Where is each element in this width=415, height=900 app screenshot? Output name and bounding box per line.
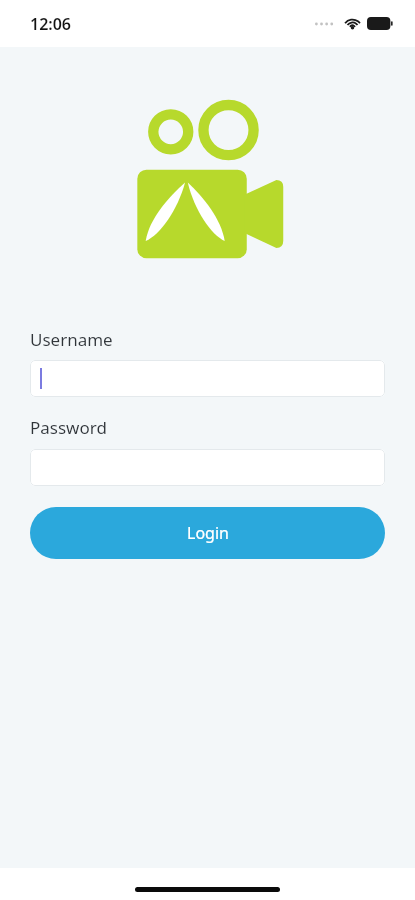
staticText: Login	[187, 522, 229, 544]
staticText: 12:06	[30, 13, 72, 35]
button[interactable]: Username input	[30, 360, 385, 397]
other: App logo	[132, 94, 284, 266]
button[interactable]: Password input	[30, 449, 385, 486]
button[interactable]: Login	[30, 507, 385, 559]
staticText: Password	[30, 416, 107, 439]
staticText: Username	[30, 328, 113, 351]
